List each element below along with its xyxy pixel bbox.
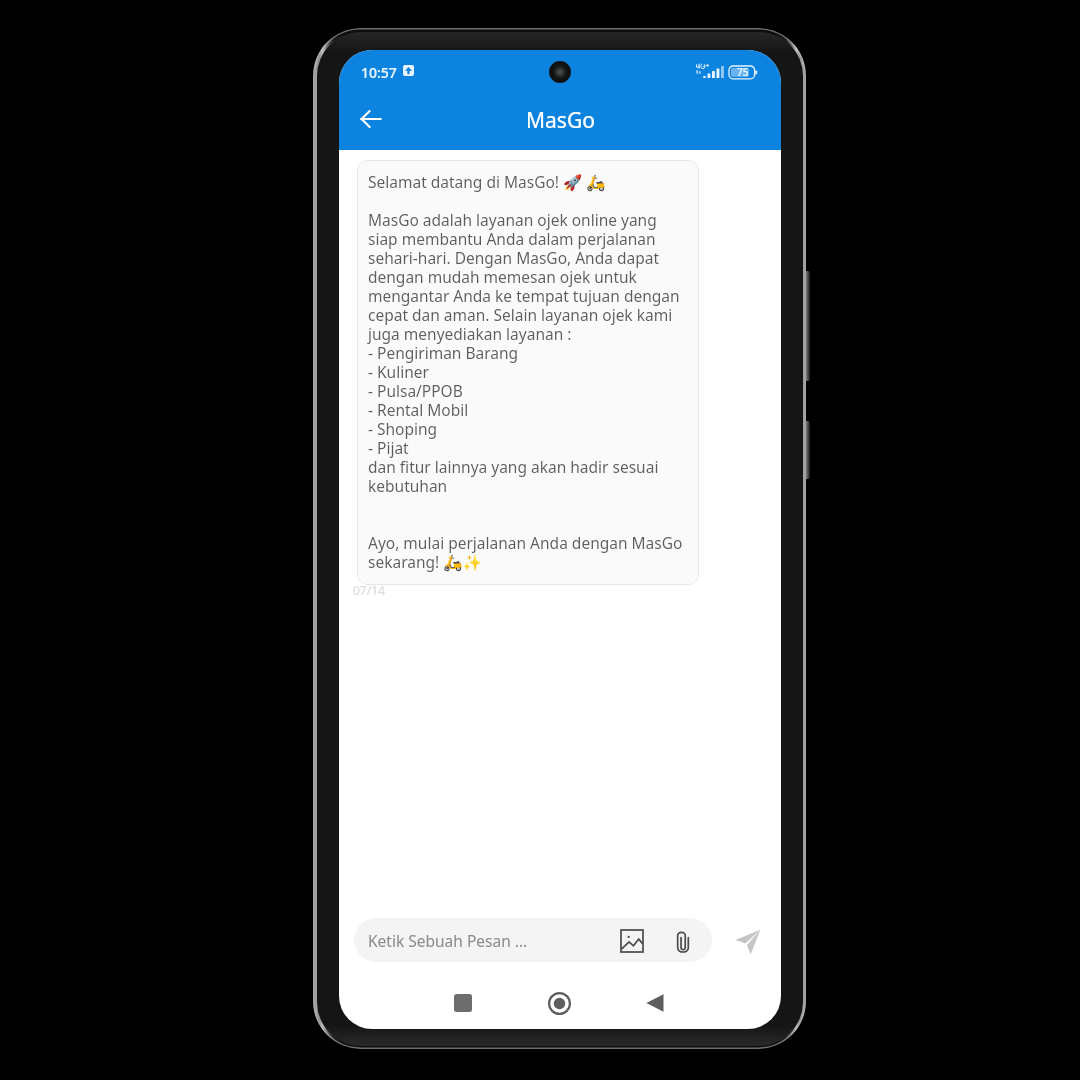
- button[interactable]: Attach image: [615, 924, 649, 958]
- button[interactable]: Ketik Sebuah Pesan ...: [354, 918, 712, 962]
- button[interactable]: Home: [537, 981, 581, 1025]
- button[interactable]: Send: [728, 922, 768, 962]
- staticText: Selamat datang di MasGo! 🚀 🛵 MasGo adala…: [368, 173, 688, 572]
- button[interactable]: Back: [633, 981, 677, 1025]
- staticText: 10:57: [361, 63, 397, 82]
- button[interactable]: Selamat datang di MasGo! 🚀 🛵 MasGo adala…: [357, 160, 699, 585]
- staticText: Ketik Sebuah Pesan ...: [368, 930, 528, 951]
- staticText: MasGo: [526, 106, 595, 135]
- staticText: 75: [737, 65, 749, 78]
- button[interactable]: Recents: [441, 981, 485, 1025]
- button[interactable]: Back: [347, 95, 395, 143]
- staticText: 07/14: [353, 582, 385, 598]
- button[interactable]: Attach file: [666, 925, 700, 959]
